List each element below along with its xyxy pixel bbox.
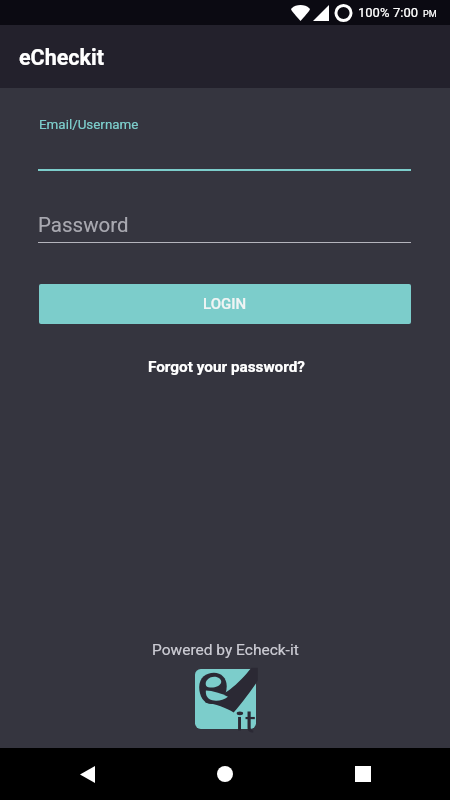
- staticText: Password: [38, 213, 129, 237]
- staticText: Powered by Echeck-it: [152, 641, 299, 659]
- button[interactable]: Home: [201, 750, 249, 798]
- staticText: Email/Username: [39, 117, 139, 133]
- staticText: 7:00: [393, 5, 419, 20]
- staticText: PM: [423, 9, 437, 20]
- button[interactable]: LOGIN: [39, 284, 411, 324]
- button[interactable]: Forgot your password?: [144, 354, 309, 380]
- staticText: eCheckit: [19, 45, 104, 70]
- button[interactable]: Back: [63, 750, 111, 798]
- staticText: LOGIN: [203, 295, 247, 313]
- staticText: Forgot your password?: [148, 358, 305, 376]
- staticText: 100%: [358, 5, 390, 20]
- button[interactable]: Recent apps: [339, 750, 387, 798]
